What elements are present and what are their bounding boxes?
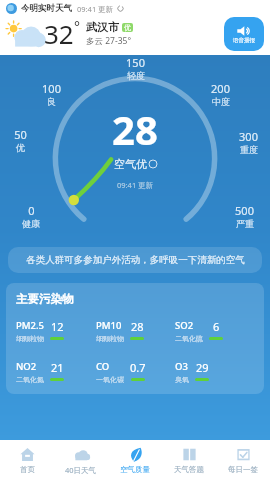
button[interactable]: 空气优 [114, 157, 157, 171]
staticText: NO2 [16, 360, 37, 373]
staticText: 12 [51, 319, 64, 334]
staticText: 细颗粒物 [96, 334, 124, 343]
staticText: 臭氧 [175, 375, 189, 384]
staticText: 200 [211, 81, 230, 96]
staticText: 二氧化氮 [16, 375, 44, 384]
staticText: 严重 [236, 218, 254, 229]
staticText: 29 [196, 360, 209, 375]
button[interactable]: 各类人群可多参加户外活动，多呼吸一下清新的空气 [8, 247, 262, 273]
button[interactable]: PM10 [96, 319, 175, 343]
staticText: 中度 [212, 96, 230, 107]
staticText: 二氧化硫 [175, 334, 203, 343]
staticText: 各类人群可多参加户外活动，多呼吸一下清新的空气 [26, 254, 245, 266]
staticText: 150 [126, 55, 145, 70]
staticText: PM2.5 [16, 319, 44, 332]
staticText: 轻度 [127, 70, 145, 81]
staticText: PM10 [96, 319, 122, 332]
button[interactable]: NO2 [16, 360, 96, 384]
staticText: 28 [112, 102, 158, 156]
staticText: 首页 [20, 465, 35, 474]
staticText: 每日一签 [228, 465, 258, 474]
staticText: 细颗粒物 [16, 334, 44, 343]
staticText: 主要污染物 [16, 292, 74, 306]
staticText: 0 [28, 203, 35, 218]
staticText: 今明实时天气 [21, 3, 72, 14]
staticText: 良 [47, 96, 56, 107]
staticText: 09:41 更新 [77, 4, 114, 14]
staticText: 天气答题 [174, 465, 204, 474]
staticText: 多云 27-35° [86, 35, 132, 47]
staticText: 优 [16, 142, 25, 153]
staticText: O3 [175, 360, 188, 373]
staticText: 500 [235, 203, 254, 218]
staticText: ° [74, 17, 80, 36]
button[interactable]: 每日一签 [216, 440, 270, 480]
button[interactable]: CO [96, 360, 175, 384]
staticText: 28 [131, 319, 144, 334]
staticText: 武汉市 [86, 20, 119, 34]
staticText: 语音播报 [233, 37, 255, 44]
staticText: SO2 [175, 319, 194, 332]
button[interactable]: SO2 [175, 319, 254, 343]
other: Help [149, 160, 157, 168]
staticText: 优 [124, 23, 131, 32]
button[interactable]: O3 [175, 360, 254, 384]
staticText: 空气优 [114, 157, 147, 171]
staticText: 6 [213, 319, 220, 334]
staticText: 300 [239, 129, 258, 144]
button[interactable]: 首页 [0, 440, 54, 480]
staticText: 0.7 [130, 360, 146, 375]
staticText: 32 [44, 16, 74, 51]
staticText: 一氧化碳 [96, 375, 124, 384]
staticText: 40日天气 [65, 465, 97, 475]
button[interactable]: 空气质量 [108, 440, 162, 480]
staticText: 空气质量 [120, 465, 150, 474]
staticText: 健康 [22, 218, 40, 229]
staticText: 21 [51, 360, 64, 375]
button[interactable]: 40日天气 [54, 440, 108, 480]
staticText: 50 [14, 127, 27, 142]
other: Refresh [117, 5, 124, 12]
button[interactable]: 语音播报 [224, 17, 264, 51]
staticText: 重度 [240, 144, 258, 155]
staticText: 100 [42, 81, 61, 96]
button[interactable]: 天气答题 [162, 440, 216, 480]
button[interactable]: PM2.5 [16, 319, 96, 343]
staticText: CO [96, 360, 110, 373]
staticText: 09:41 更新 [117, 180, 154, 190]
